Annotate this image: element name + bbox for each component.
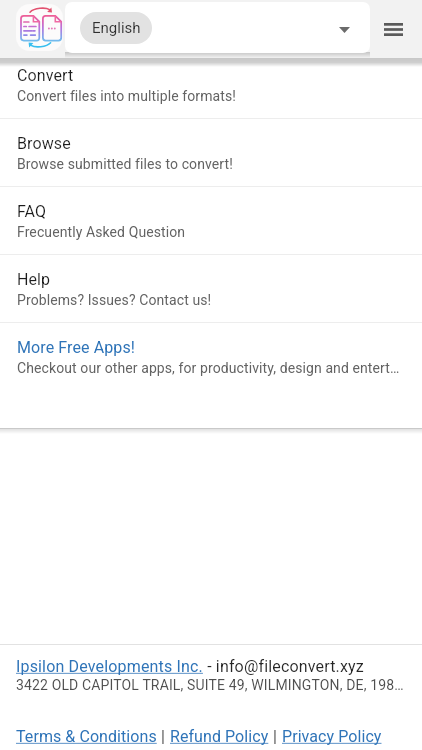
- button[interactable]: English: [65, 2, 370, 53]
- button[interactable]: Help: [0, 255, 422, 322]
- button[interactable]: Browse: [0, 119, 422, 186]
- staticText: English: [92, 19, 141, 37]
- button[interactable]: File convert logo: [16, 4, 63, 51]
- button[interactable]: Privacy Policy: [282, 727, 382, 746]
- staticText: FAQ: [17, 202, 47, 221]
- staticText: - info@fileconvert.xyz: [203, 657, 364, 676]
- staticText: Checkout our other apps, for productivit…: [17, 360, 400, 376]
- staticText: Convert files into multiple formats!: [17, 88, 236, 104]
- button[interactable]: Ipsilon Developments Inc.: [16, 657, 203, 676]
- button[interactable]: Refund Policy: [170, 727, 269, 746]
- staticText: 3422 OLD CAPITOL TRAIL, SUITE 49, WILMIN…: [16, 677, 404, 693]
- staticText: Help: [17, 270, 51, 289]
- staticText: Convert: [17, 66, 74, 85]
- staticText: Frecuently Asked Question: [17, 224, 186, 240]
- button[interactable]: Convert: [0, 51, 422, 118]
- staticText: More Free Apps!: [17, 338, 135, 357]
- staticText: |: [269, 727, 282, 746]
- staticText: Browse submitted files to convert!: [17, 156, 233, 172]
- staticText: Browse: [17, 134, 71, 153]
- button[interactable]: More Free Apps!: [0, 323, 422, 390]
- staticText: |: [157, 727, 170, 746]
- button[interactable]: Menu: [372, 5, 415, 53]
- staticText: Problems? Issues? Contact us!: [17, 292, 212, 308]
- button[interactable]: FAQ: [0, 187, 422, 254]
- button[interactable]: Terms & Conditions: [16, 727, 157, 746]
